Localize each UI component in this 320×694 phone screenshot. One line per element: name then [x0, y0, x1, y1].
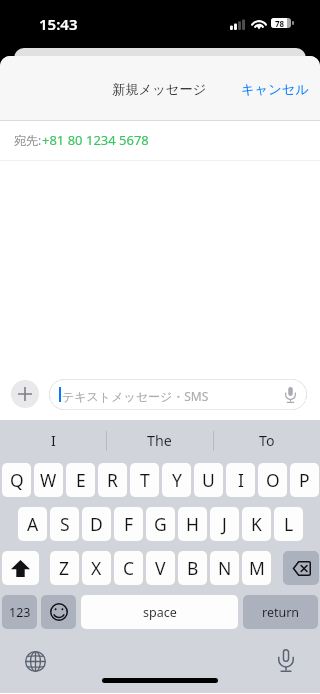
button[interactable]: I [0, 420, 106, 463]
button[interactable]: Backspace [283, 551, 319, 585]
button[interactable]: space [81, 595, 238, 629]
button[interactable]: キャンセル [233, 73, 318, 106]
staticText: K [251, 512, 262, 536]
staticText: テキストメッセージ・SMS [62, 388, 209, 404]
button[interactable]: To [213, 420, 320, 463]
staticText: キャンセル [241, 81, 310, 98]
button[interactable]: J [210, 507, 239, 541]
staticText: S [60, 512, 70, 536]
button[interactable]: S [50, 507, 79, 541]
button[interactable]: Dictation [273, 647, 299, 673]
staticText: X [91, 556, 102, 580]
staticText: V [155, 556, 166, 580]
button[interactable]: T [130, 463, 159, 497]
staticText: Y [172, 468, 182, 492]
staticText: R [107, 468, 118, 492]
button[interactable]: U [194, 463, 223, 497]
button[interactable]: X [82, 551, 111, 585]
staticText: 123 [9, 604, 31, 621]
staticText: M [249, 556, 265, 580]
button[interactable]: Z [50, 551, 79, 585]
staticText: B [187, 556, 199, 580]
button[interactable]: Shift [2, 551, 39, 585]
button[interactable]: Switch keyboard [24, 650, 46, 672]
button[interactable]: Q [2, 463, 31, 497]
staticText: Q [10, 468, 24, 492]
staticText: space [143, 604, 177, 621]
button[interactable]: C [114, 551, 143, 585]
staticText: F [124, 512, 134, 536]
button[interactable]: E [66, 463, 95, 497]
staticText: To [259, 431, 275, 450]
staticText: 15:43 [39, 14, 78, 34]
staticText: 新規メッセージ [112, 81, 207, 98]
button[interactable]: N [210, 551, 239, 585]
staticText: L [284, 512, 294, 536]
button[interactable]: The [106, 420, 213, 463]
button[interactable]: テキストメッセージ・SMS [49, 379, 307, 410]
button[interactable]: M [242, 551, 271, 585]
button[interactable]: K [242, 507, 271, 541]
staticText: W [40, 468, 57, 492]
button[interactable]: I [226, 463, 255, 497]
button[interactable]: H [178, 507, 207, 541]
button[interactable]: G [146, 507, 175, 541]
button[interactable]: B [178, 551, 207, 585]
button[interactable]: L [274, 507, 303, 541]
staticText: I [51, 431, 56, 450]
button[interactable]: return [243, 595, 318, 629]
button[interactable]: P [290, 463, 319, 497]
staticText: T [140, 468, 150, 492]
staticText: N [218, 556, 232, 580]
staticText: Z [59, 556, 70, 580]
staticText: U [202, 468, 215, 492]
staticText: return [262, 604, 300, 621]
button[interactable]: Y [162, 463, 191, 497]
button[interactable]: 123 [2, 595, 37, 629]
staticText: G [154, 512, 167, 536]
button[interactable]: Emoji [41, 595, 76, 629]
staticText: J [222, 512, 227, 536]
button[interactable]: Add attachment [11, 380, 39, 408]
button[interactable]: R [98, 463, 127, 497]
staticText: H [186, 512, 199, 536]
staticText: 宛先: [14, 132, 42, 148]
staticText: C [123, 556, 135, 580]
staticText: P [299, 468, 310, 492]
button[interactable]: O [258, 463, 287, 497]
staticText: 78 [275, 18, 285, 28]
staticText: D [90, 512, 103, 536]
staticText: +81 80 1234 5678 [42, 131, 149, 149]
button[interactable]: V [146, 551, 175, 585]
staticText: O [266, 468, 280, 492]
staticText: E [76, 468, 86, 492]
button[interactable]: W [34, 463, 63, 497]
button[interactable]: D [82, 507, 111, 541]
button[interactable]: F [114, 507, 143, 541]
staticText: I [238, 468, 244, 492]
button[interactable]: Dictate [281, 386, 299, 404]
staticText: The [147, 431, 172, 450]
staticText: A [27, 512, 39, 536]
button[interactable]: A [18, 507, 47, 541]
